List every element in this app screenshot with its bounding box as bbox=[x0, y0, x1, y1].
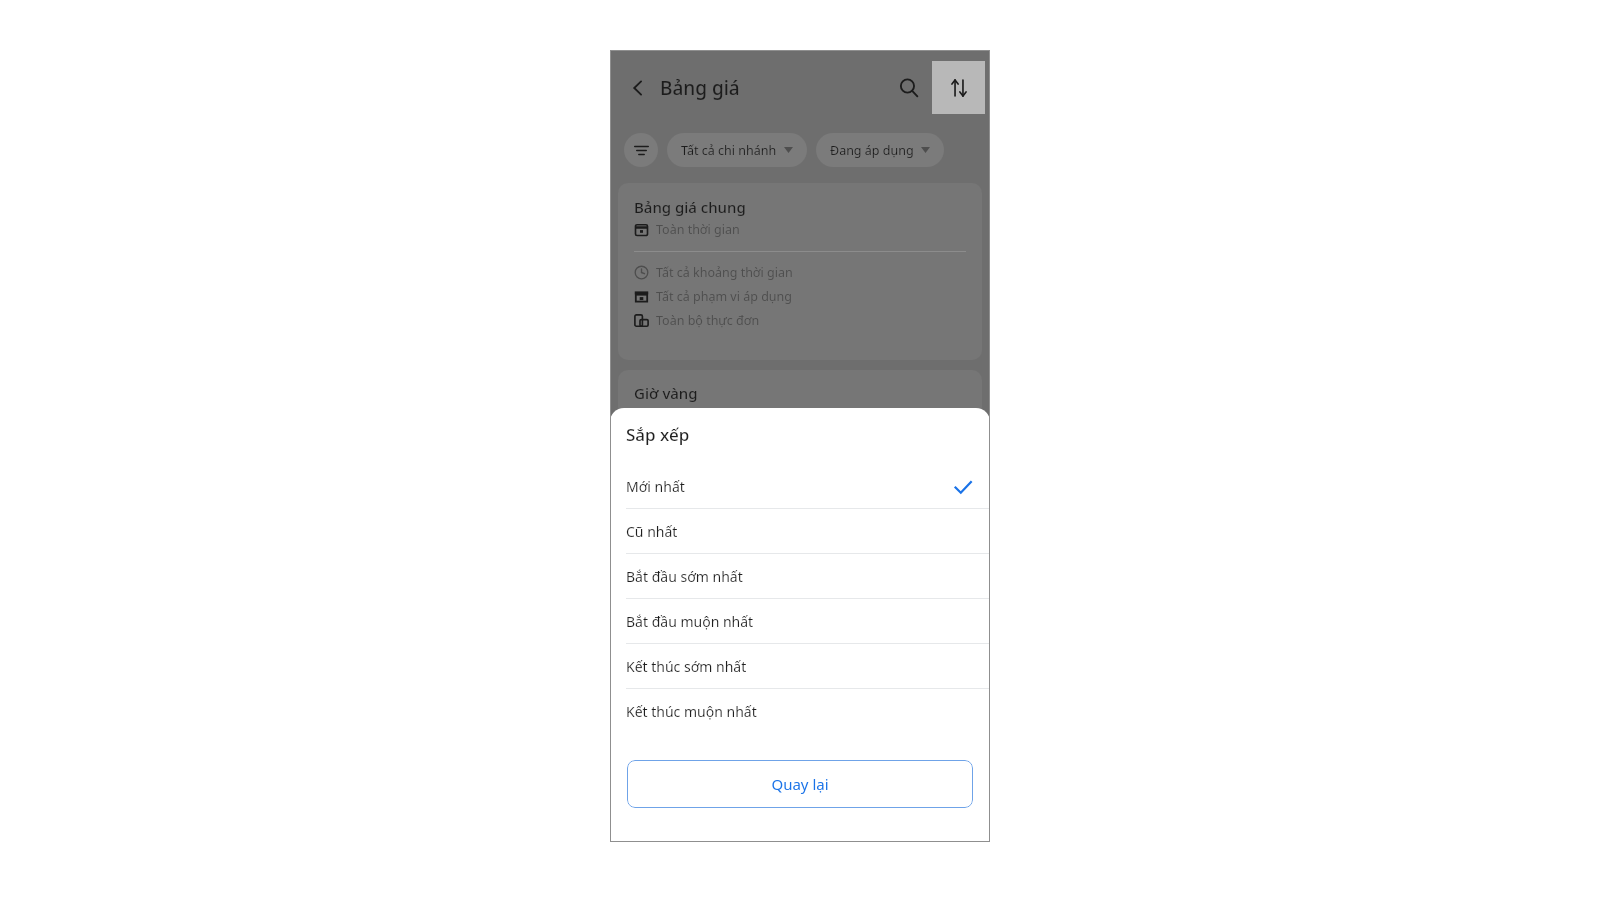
button[interactable]: Kết thúc sớm nhất bbox=[610, 644, 990, 689]
button[interactable]: Sort bbox=[932, 61, 985, 114]
button[interactable]: Bắt đầu sớm nhất bbox=[610, 554, 990, 599]
staticText: Sắp xếp bbox=[626, 423, 690, 446]
button[interactable]: Bảng giá chung bbox=[618, 183, 982, 360]
staticText: Bảng giá bbox=[660, 75, 740, 101]
staticText: Quay lại bbox=[771, 774, 829, 794]
button[interactable]: Giờ vàng bbox=[618, 370, 982, 500]
button[interactable]: Bắt đầu muộn nhất bbox=[610, 599, 990, 644]
staticText: Tất cả khoảng thời gian bbox=[656, 264, 793, 281]
button[interactable]: Cũ nhất bbox=[610, 509, 990, 554]
button[interactable]: Filter bbox=[624, 133, 658, 167]
staticText: Tất cả chi nhánh bbox=[681, 142, 777, 159]
staticText: Bắt đầu muộn nhất bbox=[626, 612, 754, 631]
button[interactable]: Back bbox=[620, 70, 656, 106]
staticText: Bảng giá chung bbox=[634, 197, 746, 217]
staticText: Mới nhất bbox=[626, 477, 685, 496]
staticText: Toàn bộ thực đơn bbox=[656, 312, 760, 329]
staticText: Tất cả phạm vi áp dụng bbox=[656, 288, 792, 305]
staticText: Bắt đầu sớm nhất bbox=[626, 567, 743, 586]
staticText: Giờ vàng bbox=[634, 383, 698, 403]
button[interactable]: Đang áp dụng bbox=[816, 133, 944, 167]
button[interactable]: Quay lại bbox=[627, 760, 973, 808]
button[interactable]: Kết thúc muộn nhất bbox=[610, 689, 990, 734]
button[interactable]: Mới nhất bbox=[610, 464, 990, 509]
staticText: Kết thúc sớm nhất bbox=[626, 657, 747, 676]
staticText: Cũ nhất bbox=[626, 522, 678, 541]
staticText: Toàn thời gian bbox=[656, 221, 740, 238]
staticText: Kết thúc muộn nhất bbox=[626, 702, 757, 721]
staticText: Đang áp dụng bbox=[830, 142, 914, 159]
button[interactable]: Search bbox=[886, 65, 932, 111]
button[interactable]: Tất cả chi nhánh bbox=[667, 133, 807, 167]
